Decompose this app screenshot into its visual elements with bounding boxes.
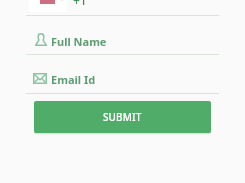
- button[interactable]: Full Name: [0, 33, 245, 49]
- staticText: Email Id: [51, 72, 96, 87]
- button[interactable]: Email Id: [0, 72, 245, 88]
- button[interactable]: Select country: [29, 0, 67, 12]
- staticText: +1: [73, 0, 87, 8]
- staticText: SUBMIT: [103, 110, 142, 124]
- button[interactable]: SUBMIT: [34, 101, 211, 133]
- staticText: Full Name: [51, 34, 107, 49]
